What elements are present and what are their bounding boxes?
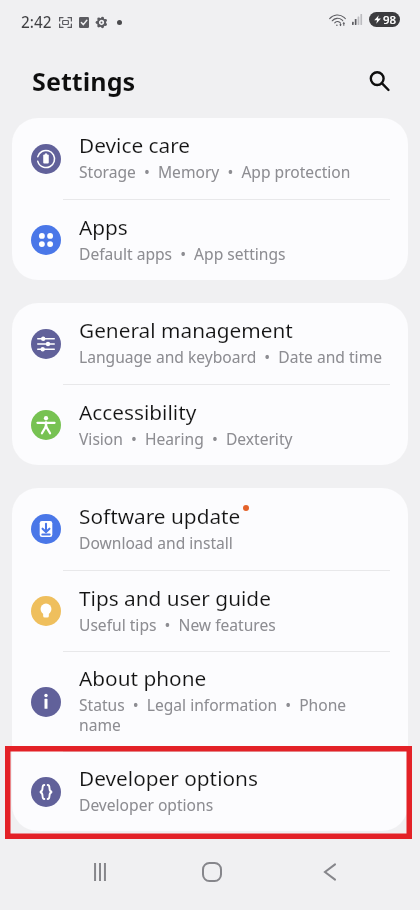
- staticText: Software update: [79, 502, 241, 530]
- staticText: Accessibility: [79, 398, 197, 426]
- staticText: About phone: [79, 664, 207, 692]
- staticText: Useful tips • New features: [79, 614, 276, 635]
- button[interactable]: About phone: [12, 652, 408, 751]
- button[interactable]: Device care: [12, 118, 408, 199]
- staticText: Tips and user guide: [79, 584, 271, 612]
- staticText: Developer options: [79, 794, 214, 815]
- staticText: Storage • Memory • App protection: [79, 161, 351, 182]
- staticText: Vision • Hearing • Dexterity: [79, 428, 293, 449]
- staticText: Language and keyboard • Date and time: [79, 346, 383, 367]
- button[interactable]: Recent apps: [77, 849, 123, 895]
- staticText: Settings: [32, 64, 136, 98]
- staticText: Apps: [79, 213, 128, 241]
- button[interactable]: Accessibility: [12, 385, 408, 465]
- staticText: Device care: [79, 131, 191, 159]
- staticText: Download and install: [79, 532, 233, 553]
- button[interactable]: Home: [189, 849, 235, 895]
- staticText: 98: [383, 12, 397, 27]
- button[interactable]: General management: [12, 303, 408, 384]
- staticText: Status • Legal information • Phone name: [79, 694, 347, 736]
- button[interactable]: Developer options: [12, 752, 408, 831]
- staticText: General management: [79, 316, 293, 344]
- button[interactable]: Back: [307, 849, 353, 895]
- button[interactable]: Tips and user guide: [12, 571, 408, 651]
- button[interactable]: Apps: [12, 200, 408, 280]
- button[interactable]: Software update: [12, 488, 408, 570]
- staticText: Developer options: [79, 764, 258, 792]
- button[interactable]: Search: [359, 61, 399, 101]
- staticText: 2:42: [21, 12, 52, 33]
- staticText: Default apps • App settings: [79, 243, 286, 264]
